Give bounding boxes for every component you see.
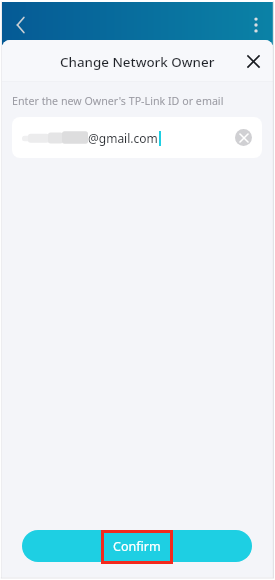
staticText: Confirm: [113, 538, 161, 555]
button[interactable]: Confirm: [22, 530, 252, 562]
button[interactable]: Clear text: [235, 129, 252, 146]
button[interactable]: Back: [6, 10, 36, 40]
staticText: Enter the new Owner's TP-Link ID or emai…: [12, 94, 224, 109]
staticText: @gmail.com: [88, 130, 158, 146]
button[interactable]: More options: [241, 10, 271, 40]
button[interactable]: Close: [240, 48, 266, 74]
staticText: Change Network Owner: [60, 53, 215, 71]
button[interactable]: @gmail.com: [12, 117, 262, 158]
